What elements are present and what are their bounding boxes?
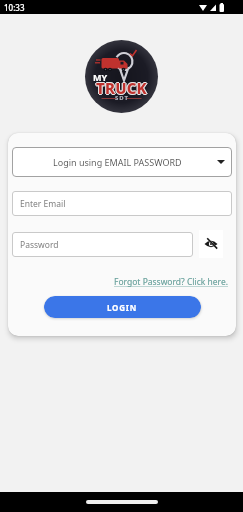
- button[interactable]: LOGIN: [44, 296, 201, 318]
- button[interactable]: Forgot Password? Click here.: [114, 276, 229, 288]
- staticText: Enter Email: [20, 198, 66, 210]
- staticText: TRUCK: [96, 77, 147, 97]
- button[interactable]: [199, 230, 223, 258]
- staticText: Login using EMAIL PASSWORD: [53, 156, 182, 168]
- staticText: TRUCK: [96, 79, 147, 99]
- button[interactable]: Login using EMAIL PASSWORD: [12, 147, 232, 177]
- staticText: MY: [93, 71, 108, 83]
- staticText: SDT: [115, 94, 129, 102]
- staticText: LOGIN: [107, 302, 138, 313]
- staticText: TRUCK: [96, 78, 147, 98]
- staticText: TRUCK: [97, 78, 148, 98]
- button[interactable]: Password: [12, 232, 193, 257]
- button[interactable]: Enter Email: [12, 191, 232, 216]
- staticText: Password: [20, 239, 59, 251]
- staticText: TRUCK: [95, 78, 146, 98]
- staticText: 10:33: [4, 2, 25, 13]
